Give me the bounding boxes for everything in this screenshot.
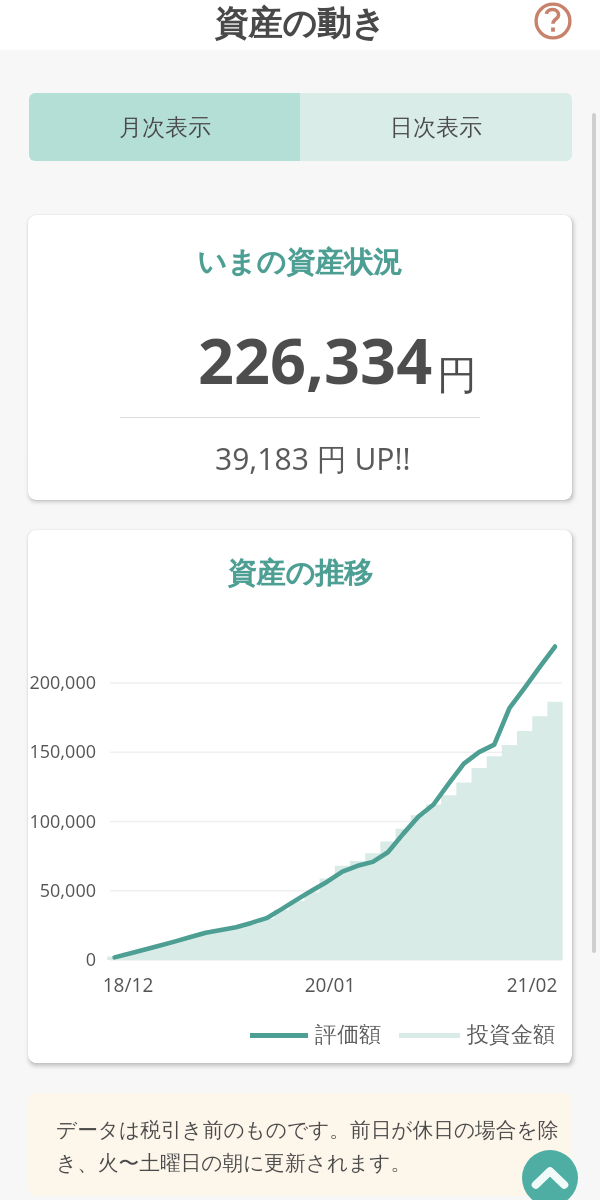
- staticText: 18/12: [88, 972, 168, 998]
- staticText: 円: [437, 350, 477, 400]
- staticText: 100,000: [28, 809, 96, 834]
- staticText: いまの資産状況: [197, 244, 403, 281]
- staticText: 226,334: [198, 317, 433, 403]
- staticText: 21/02: [492, 972, 572, 998]
- staticText: 資産の動き: [214, 2, 386, 45]
- button[interactable]: 日次表示: [300, 93, 572, 161]
- button[interactable]: Help: [528, 0, 577, 45]
- staticText: 投資金額: [467, 1021, 555, 1049]
- button[interactable]: 月次表示: [29, 93, 300, 161]
- staticText: 評価額: [315, 1021, 381, 1049]
- staticText: 月次表示: [119, 113, 211, 142]
- staticText: 50,000: [28, 878, 96, 903]
- staticText: 150,000: [28, 739, 96, 764]
- staticText: 39,183 円 UP!!: [215, 438, 411, 479]
- staticText: 日次表示: [390, 113, 482, 142]
- staticText: き、火〜土曜日の朝に更新されます。: [56, 1150, 412, 1176]
- staticText: 200,000: [28, 670, 96, 695]
- staticText: 20/01: [290, 972, 370, 998]
- staticText: 資産の推移: [28, 555, 572, 592]
- button[interactable]: Scroll to top: [522, 1150, 578, 1200]
- staticText: 0: [28, 947, 96, 972]
- staticText: データは税引き前のものです。前日が休日の場合を除: [56, 1117, 559, 1150]
